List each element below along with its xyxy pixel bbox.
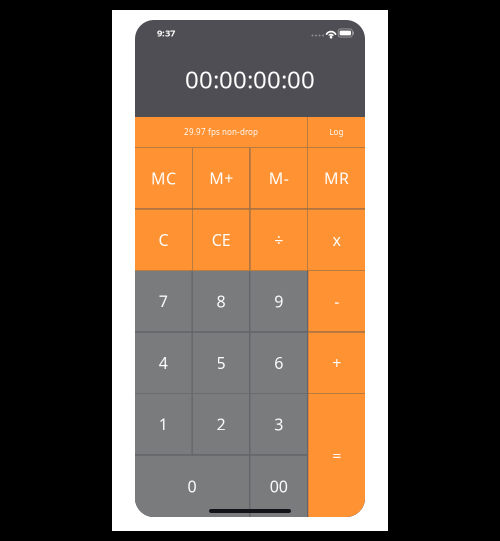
staticText: 29.97 fps non-drop: [184, 127, 258, 137]
staticText: 4: [159, 352, 168, 373]
button[interactable]: 5: [193, 332, 249, 393]
staticText: MC: [151, 168, 176, 189]
button[interactable]: 00: [250, 455, 307, 517]
button[interactable]: C: [135, 209, 192, 270]
staticText: 9:37: [157, 27, 175, 39]
button[interactable]: 0: [135, 455, 249, 517]
button[interactable]: 9: [250, 271, 307, 331]
staticText: 2: [216, 414, 225, 435]
staticText: 3: [274, 414, 283, 435]
button[interactable]: 6: [250, 332, 307, 393]
button[interactable]: Log: [308, 117, 365, 147]
staticText: 00: [270, 476, 288, 497]
staticText: 0: [187, 476, 196, 497]
button[interactable]: M+: [193, 148, 249, 208]
button[interactable]: MC: [135, 148, 192, 208]
button[interactable]: 3: [250, 394, 307, 454]
button[interactable]: 2: [193, 394, 249, 454]
staticText: 6: [274, 352, 283, 373]
staticText: 5: [216, 352, 225, 373]
button[interactable]: x: [308, 209, 365, 270]
staticText: CE: [212, 229, 231, 250]
staticText: -: [334, 291, 339, 312]
button[interactable]: 4: [135, 332, 192, 393]
staticText: 00:00:00:00: [185, 63, 315, 95]
staticText: =: [332, 445, 341, 466]
button[interactable]: =: [308, 394, 365, 517]
button[interactable]: 7: [135, 271, 192, 331]
button[interactable]: M-: [250, 148, 307, 208]
button[interactable]: MR: [308, 148, 365, 208]
button[interactable]: -: [308, 271, 365, 331]
staticText: ÷: [274, 229, 283, 250]
staticText: M-: [269, 168, 289, 189]
button[interactable]: +: [308, 332, 365, 393]
staticText: C: [158, 229, 168, 250]
staticText: 8: [216, 291, 225, 312]
button[interactable]: CE: [193, 209, 249, 270]
staticText: M+: [209, 168, 233, 189]
staticText: x: [332, 229, 340, 250]
button[interactable]: 8: [193, 271, 249, 331]
staticText: 9: [274, 291, 283, 312]
staticText: Log: [329, 127, 343, 137]
staticText: +: [332, 352, 341, 373]
button[interactable]: 1: [135, 394, 192, 454]
button[interactable]: ÷: [250, 209, 307, 270]
button[interactable]: 29.97 fps non-drop: [135, 117, 307, 147]
staticText: 7: [159, 291, 168, 312]
staticText: MR: [324, 168, 349, 189]
staticText: 1: [159, 414, 168, 435]
